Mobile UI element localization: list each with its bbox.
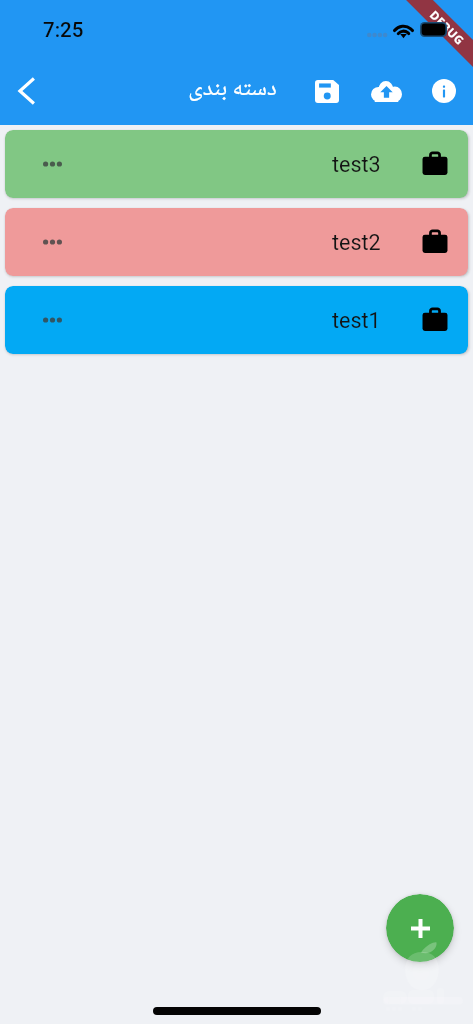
button[interactable]: More options: [34, 220, 70, 264]
staticText: test2: [332, 230, 381, 255]
button[interactable]: Back: [2, 67, 50, 115]
button[interactable]: More options: [5, 130, 468, 198]
staticText: 7:25: [43, 18, 84, 42]
button[interactable]: Add category: [386, 894, 454, 962]
button[interactable]: Upload: [362, 67, 410, 115]
staticText: DEBUG: [426, 7, 468, 49]
button[interactable]: More options: [5, 208, 468, 276]
button[interactable]: Save: [303, 67, 351, 115]
staticText: test1: [332, 308, 381, 333]
button[interactable]: More options: [34, 298, 70, 342]
button[interactable]: More options: [34, 142, 70, 186]
staticText: دسته بندی: [188, 70, 277, 110]
button[interactable]: More options: [5, 286, 468, 354]
staticText: test3: [332, 152, 381, 177]
button[interactable]: Info: [420, 67, 468, 115]
